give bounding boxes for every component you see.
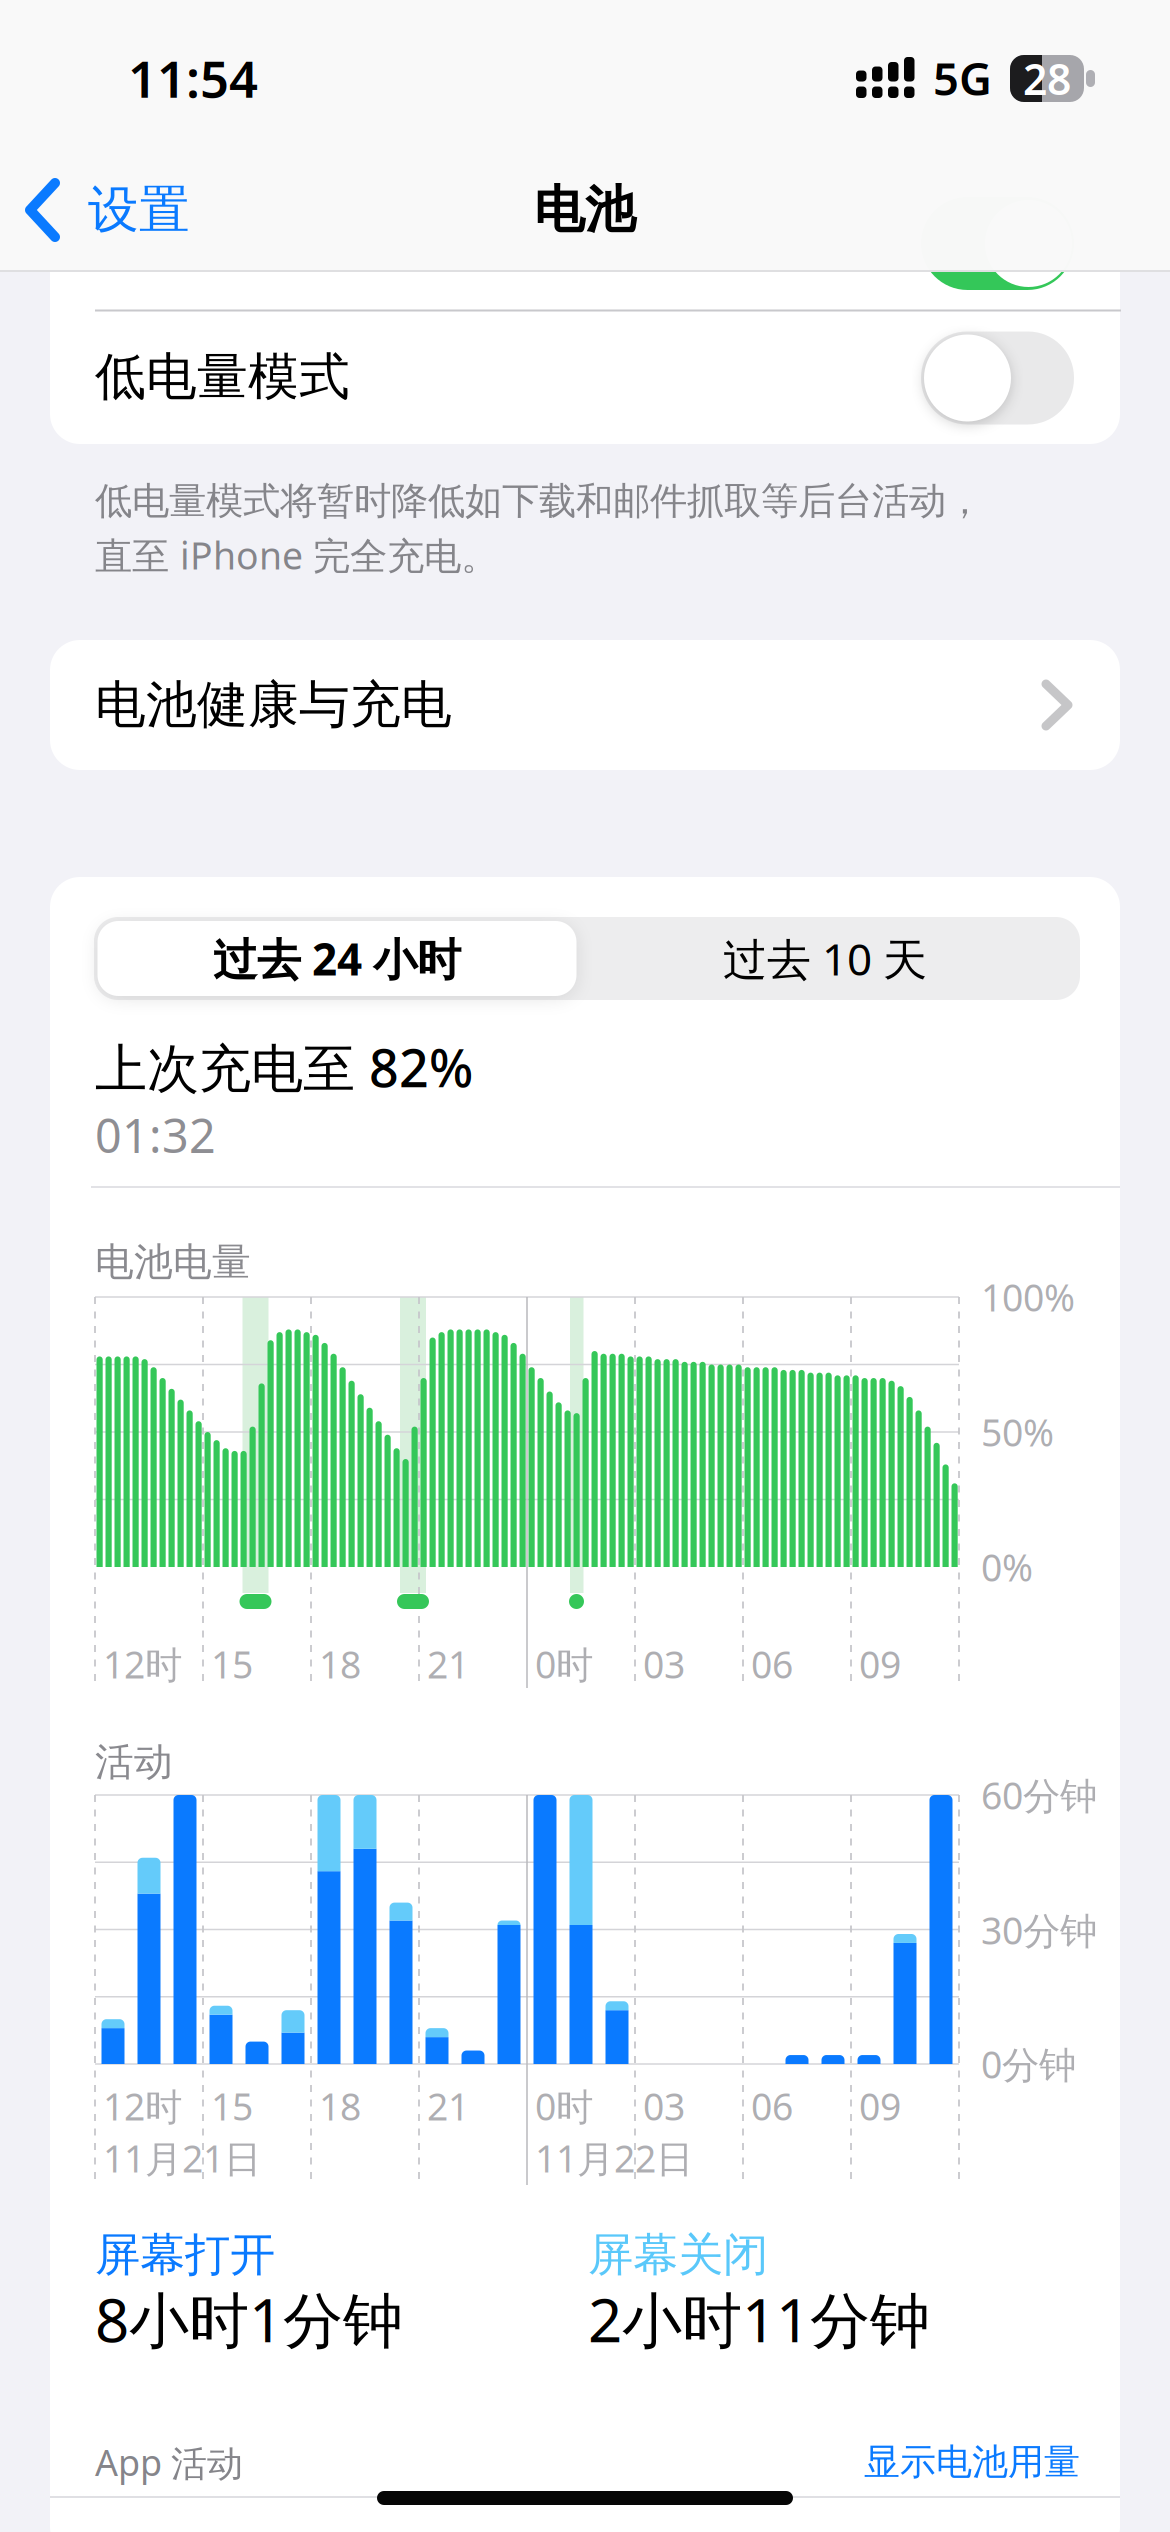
staticText: 12时 — [103, 2081, 182, 2131]
staticText: 15 — [211, 1639, 253, 1689]
staticText: 11:54 — [128, 44, 258, 112]
staticText: 0时 — [535, 2081, 593, 2131]
staticText: 显示电池用量 — [864, 2440, 1080, 2484]
button[interactable]: 电池健康与充电 — [0, 0, 1170, 2532]
staticText: 8小时1分钟 — [95, 2279, 403, 2359]
button[interactable]: 显示电池用量 — [0, 0, 1170, 2532]
staticText: 09 — [859, 1639, 901, 1689]
staticText: 21 — [427, 1639, 469, 1689]
staticText: 低电量模式将暂时降低如下载和邮件抓取等后台活动， — [95, 478, 983, 524]
staticText: 09 — [859, 2081, 901, 2131]
staticText: 21 — [427, 2081, 469, 2131]
staticText: 直至 iPhone 完全充电。 — [95, 530, 498, 580]
staticText: 过去 10 天 — [723, 929, 927, 988]
staticText: 0分钟 — [981, 2039, 1076, 2089]
staticText: 电池电量 — [95, 1238, 251, 1286]
staticText: 12时 — [103, 1639, 182, 1689]
staticText: 50% — [981, 1407, 1054, 1457]
staticText: 过去 24 小时 — [213, 929, 461, 988]
staticText: 11月22日 — [535, 2133, 693, 2183]
staticText: App 活动 — [95, 2438, 243, 2486]
staticText: 低电量模式 — [95, 346, 350, 408]
button[interactable]: 过去 24 小时 — [0, 0, 1170, 2532]
button[interactable]: 过去 10 天 — [0, 0, 1170, 2532]
button[interactable]: 低电量模式 — [0, 0, 1170, 2532]
staticText: 0% — [981, 1542, 1033, 1592]
staticText: 5G — [933, 48, 992, 108]
staticText: 18 — [319, 2081, 361, 2131]
staticText: 11月21日 — [103, 2133, 261, 2183]
staticText: 28 — [1023, 50, 1071, 107]
staticText: 03 — [643, 1639, 685, 1689]
staticText: 设置 — [88, 179, 190, 241]
staticText: 屏幕关闭 — [588, 2227, 768, 2283]
staticText: 2小时11分钟 — [588, 2279, 930, 2359]
staticText: 01:32 — [95, 1104, 216, 1166]
staticText: 上次充电至 82% — [95, 1032, 473, 1102]
staticText: 30分钟 — [981, 1905, 1097, 1955]
button[interactable]: 设置 — [0, 0, 1170, 2532]
staticText: 15 — [211, 2081, 253, 2131]
staticText: 电池 — [534, 179, 636, 241]
staticText: 18 — [319, 1639, 361, 1689]
staticText: 100% — [981, 1272, 1075, 1322]
staticText: 0时 — [535, 1639, 593, 1689]
staticText: 屏幕打开 — [95, 2227, 275, 2283]
staticText: 06 — [751, 2081, 793, 2131]
staticText: 06 — [751, 1639, 793, 1689]
staticText: 活动 — [95, 1738, 173, 1786]
staticText: 03 — [643, 2081, 685, 2131]
staticText: 电池健康与充电 — [95, 674, 452, 736]
staticText: 60分钟 — [981, 1770, 1097, 1820]
